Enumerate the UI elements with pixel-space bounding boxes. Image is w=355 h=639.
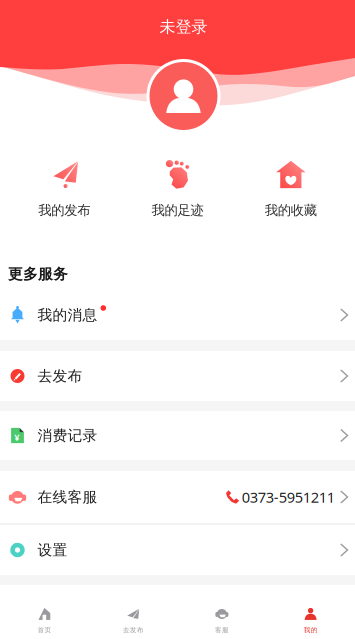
button[interactable]: 我的消息	[0, 290, 355, 340]
button[interactable]: 去发布	[89, 585, 178, 639]
staticText: ¥	[14, 431, 19, 443]
button[interactable]: ¥	[0, 411, 355, 460]
button[interactable]: 设置	[0, 525, 355, 575]
staticText: 我的消息	[37, 306, 97, 324]
staticText: 0373-5951211	[242, 487, 335, 507]
staticText: 我的足迹	[151, 202, 203, 218]
staticText: 客服	[215, 626, 229, 634]
staticText: 未登录	[159, 17, 207, 37]
staticText: 首页	[37, 626, 51, 634]
staticText: 在线客服	[37, 488, 97, 506]
button[interactable]: 我的足迹	[121, 137, 234, 237]
button[interactable]: 在线客服	[0, 471, 355, 523]
button[interactable]: 我的	[266, 585, 355, 639]
staticText: 去发布	[123, 626, 144, 634]
button[interactable]: 客服	[177, 585, 266, 639]
button[interactable]: 我的发布	[7, 137, 121, 237]
staticText: 去发布	[37, 367, 82, 385]
staticText: 我的收藏	[265, 202, 317, 218]
button[interactable]: 首页	[0, 585, 89, 639]
staticText: 设置	[37, 541, 67, 559]
staticText: 我的	[304, 626, 318, 634]
button[interactable]: 去发布	[0, 351, 355, 401]
staticText: 更多服务	[8, 265, 68, 283]
staticText: 我的发布	[38, 202, 90, 218]
button[interactable]: 我的收藏	[234, 137, 347, 237]
staticText: 消费记录	[37, 426, 97, 444]
